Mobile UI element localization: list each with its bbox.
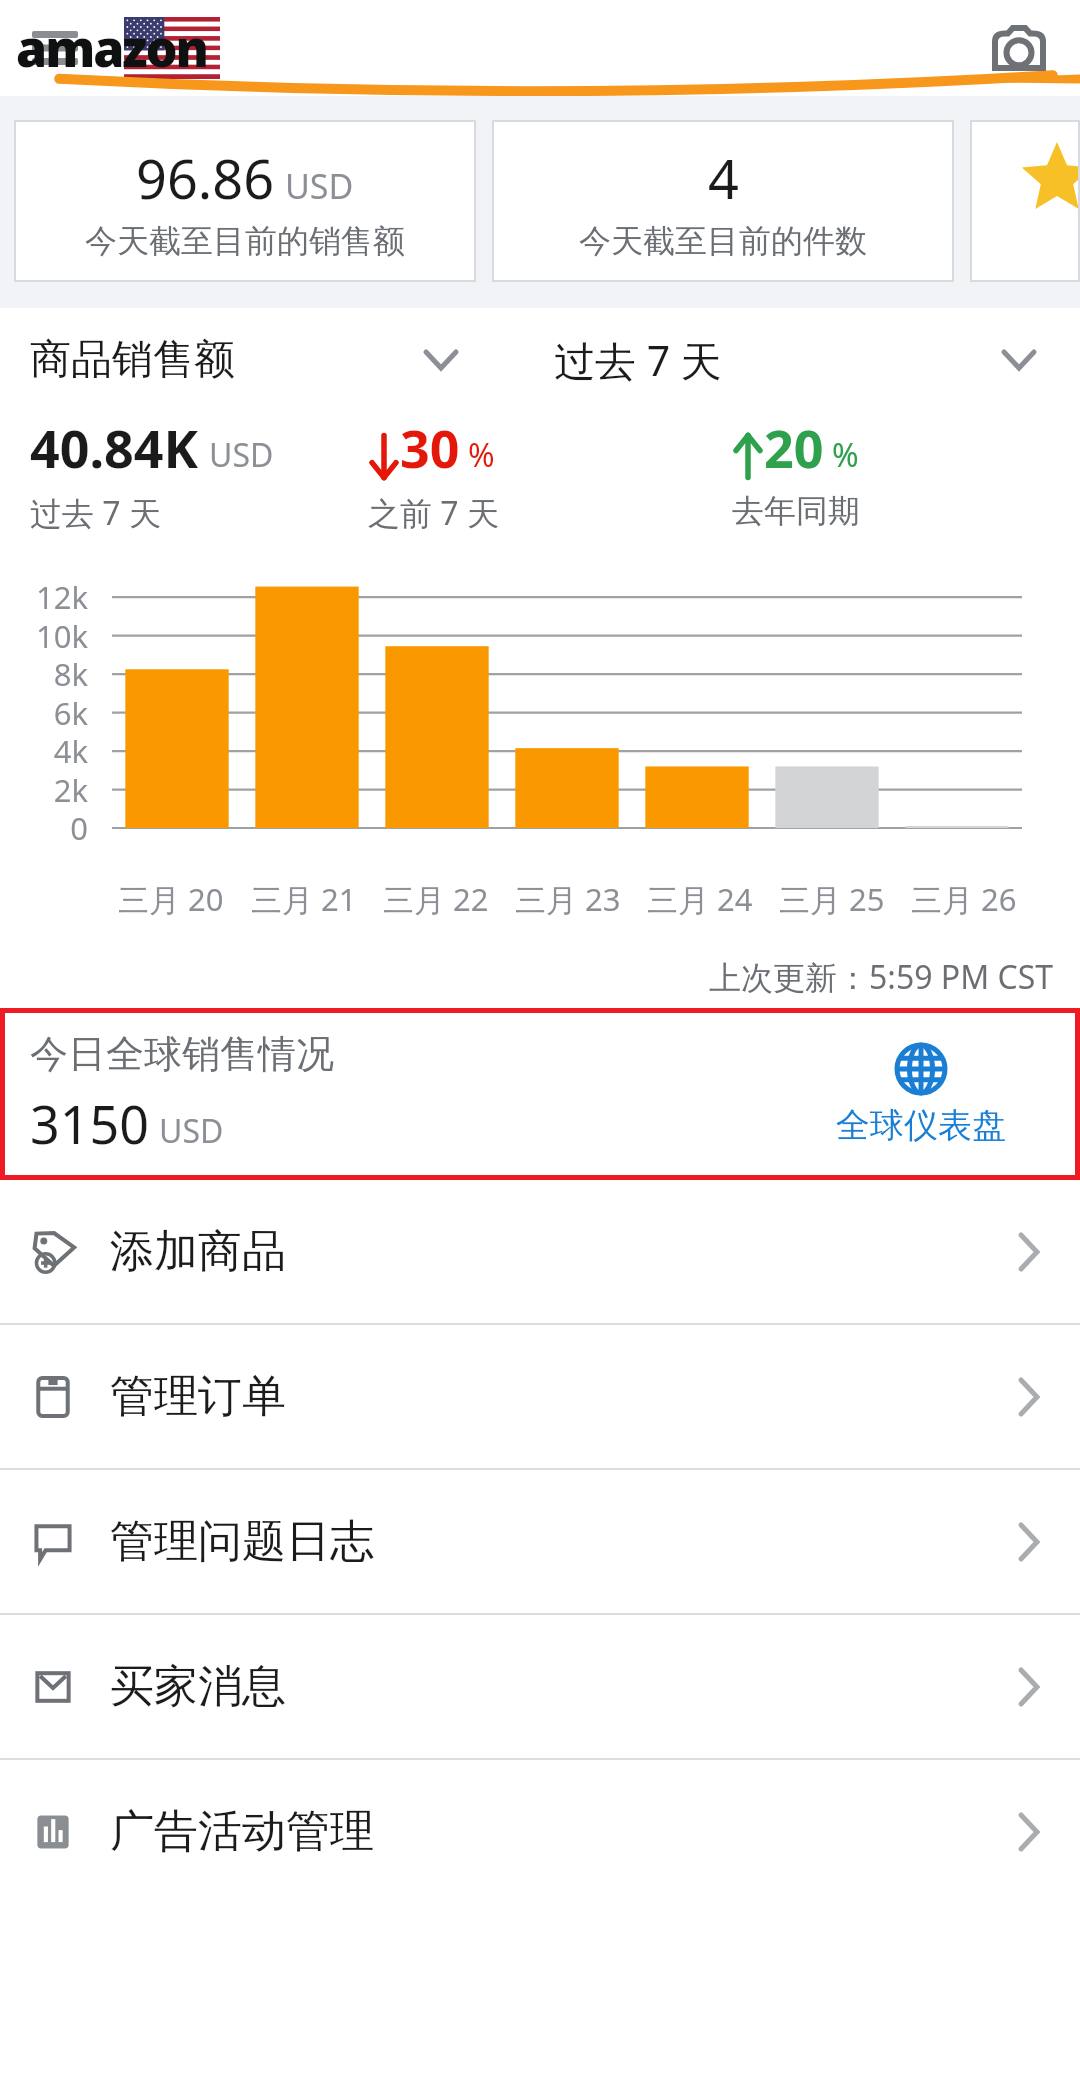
button[interactable]: 96.86 (14, 120, 476, 282)
staticText: 三月 21 (251, 878, 357, 920)
button[interactable]: 管理问题日志 (0, 1470, 1080, 1613)
staticText: % (468, 433, 495, 477)
staticText: 过去 7 天 (30, 491, 161, 535)
staticText: 今天截至目前的件数 (579, 221, 867, 261)
button[interactable]: 今日全球销售情况 (0, 1008, 1080, 1180)
staticText: 全球仪表盘 (836, 1104, 1006, 1147)
staticText: 96.86 (136, 141, 275, 215)
staticText: 商品销售额 (30, 334, 235, 386)
staticText: 4 (708, 141, 739, 215)
staticText: 三月 24 (647, 878, 753, 920)
staticText: 12k (0, 576, 88, 618)
button[interactable]: 过去 7 天 (508, 308, 1080, 412)
button[interactable]: Menu (18, 11, 92, 85)
staticText: 今日全球销售情况 (30, 1030, 334, 1078)
button[interactable]: 管理订单 (0, 1325, 1080, 1468)
staticText: 3150 (30, 1088, 149, 1159)
staticText: USD (209, 433, 274, 477)
staticText: 30 (400, 412, 460, 483)
staticText: 上次更新：5:59 PM CST (709, 955, 1054, 999)
staticText: 买家消息 (110, 1659, 286, 1714)
staticText: 4k (0, 730, 88, 772)
button[interactable]: 添加商品 (0, 1180, 1080, 1323)
staticText: 2k (0, 769, 88, 811)
staticText: 广告活动管理 (110, 1804, 374, 1859)
staticText: 过去 7 天 (554, 332, 722, 388)
button[interactable]: Marketplace United States (124, 17, 220, 79)
button[interactable]: 4 (492, 120, 954, 282)
staticText: 三月 20 (118, 878, 224, 920)
staticText: 添加商品 (110, 1224, 286, 1279)
button[interactable]: 买家消息 (0, 1615, 1080, 1758)
staticText: 8k (0, 653, 88, 695)
staticText: USD (159, 1109, 224, 1153)
staticText: 去年同期 (732, 491, 860, 531)
staticText: 40.84K (30, 412, 199, 483)
staticText: 20 (764, 412, 824, 483)
staticText: amazon (16, 14, 207, 82)
button[interactable]: 商品销售额 (0, 308, 508, 412)
staticText: 管理问题日志 (110, 1514, 374, 1569)
staticText: 三月 26 (911, 878, 1017, 920)
staticText: 0 (0, 807, 88, 849)
staticText: 10k (0, 615, 88, 657)
staticText: 三月 23 (515, 878, 621, 920)
staticText: 今天截至目前的销售额 (85, 221, 405, 261)
staticText: 6k (0, 692, 88, 734)
button[interactable]: Scan with camera (980, 9, 1058, 87)
button[interactable]: 广告活动管理 (0, 1760, 1080, 1903)
staticText: USD (285, 163, 354, 209)
button[interactable] (970, 120, 1080, 282)
staticText: 之前 7 天 (368, 491, 499, 535)
staticText: 三月 25 (779, 878, 885, 920)
staticText: % (832, 433, 859, 477)
staticText: 管理订单 (110, 1369, 286, 1424)
staticText: 三月 22 (383, 878, 489, 920)
